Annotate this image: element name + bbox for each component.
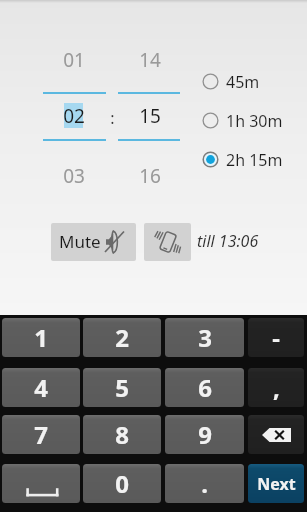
staticText: 02: [63, 103, 85, 129]
staticText: 7: [34, 418, 48, 451]
staticText: 4: [34, 371, 48, 404]
button[interactable]: 1h 30m: [200, 106, 300, 134]
button[interactable]: 7: [2, 415, 80, 454]
button[interactable]: ,: [248, 368, 304, 407]
staticText: 8: [115, 418, 129, 451]
staticText: .: [201, 467, 208, 500]
button[interactable]: 45m: [200, 67, 300, 95]
button[interactable]: 3: [165, 318, 244, 357]
button[interactable]: Mute: [51, 223, 136, 261]
button[interactable]: Vibrate: [144, 223, 191, 261]
button[interactable]: 4: [2, 368, 80, 407]
staticText: 2h 15m: [226, 149, 283, 171]
button[interactable]: 8: [83, 415, 161, 454]
button[interactable]: .: [165, 464, 244, 503]
staticText: 2: [115, 321, 129, 354]
staticText: 03: [63, 163, 85, 189]
button[interactable]: 6: [165, 368, 244, 407]
staticText: Next: [257, 473, 296, 495]
button[interactable]: 9: [165, 415, 244, 454]
staticText: 3: [198, 321, 212, 354]
staticText: 1: [34, 321, 48, 354]
button[interactable]: 5: [83, 368, 161, 407]
staticText: 9: [198, 418, 212, 451]
staticText: 14: [139, 47, 161, 73]
button[interactable]: BKSP: [248, 415, 304, 454]
staticText: 6: [198, 371, 212, 404]
staticText: :: [110, 107, 115, 129]
button[interactable]: -: [248, 318, 304, 357]
staticText: ,: [273, 371, 280, 404]
button[interactable]: 2: [83, 318, 161, 357]
button[interactable]: 2h 15m: [200, 145, 300, 173]
staticText: -: [272, 321, 280, 354]
button[interactable]: Next: [248, 464, 304, 503]
button[interactable]: 1: [2, 318, 80, 357]
staticText: Mute: [59, 230, 101, 253]
staticText: 45m: [226, 71, 260, 93]
staticText: 0: [115, 467, 129, 500]
staticText: 15: [139, 103, 161, 129]
button[interactable]: 0: [83, 464, 161, 503]
staticText: till 13:06: [197, 230, 259, 252]
staticText: 01: [63, 47, 85, 73]
staticText: 1h 30m: [226, 110, 283, 132]
staticText: 16: [139, 163, 161, 189]
staticText: 5: [115, 371, 129, 404]
button[interactable]: SPACE: [2, 464, 80, 503]
